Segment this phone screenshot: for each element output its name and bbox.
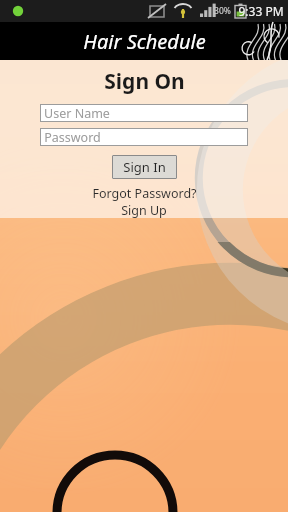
staticText: Sign In (123, 158, 166, 176)
staticText: User Name (44, 105, 110, 122)
button[interactable]: User Name (40, 104, 248, 122)
staticText: 30% (214, 5, 231, 17)
staticText: Sign On (104, 67, 185, 96)
staticText: Password (44, 129, 101, 146)
button[interactable]: Forgot Password? (90, 185, 199, 202)
button[interactable]: Sign Up (119, 202, 169, 218)
staticText: Hair Schedule (83, 28, 206, 55)
button[interactable]: Password (40, 128, 248, 146)
button[interactable]: Sign In (112, 155, 177, 179)
staticText: 9:33 PM (238, 3, 284, 19)
staticText: Forgot Password? (92, 185, 197, 202)
staticText: Sign Up (121, 202, 167, 218)
